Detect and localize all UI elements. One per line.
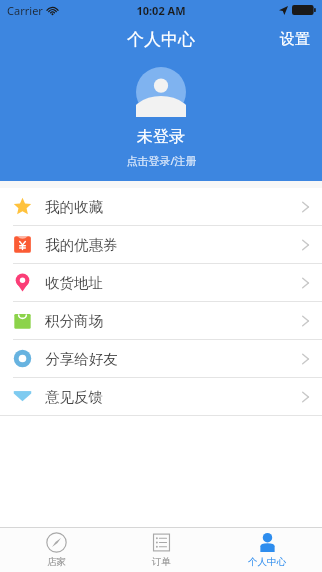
staticText: 个人中心 [248, 556, 286, 568]
staticText: 积分商场 [45, 312, 103, 330]
staticText: 订单 [152, 556, 171, 568]
staticText: Carrier [7, 3, 43, 18]
button[interactable]: 分享给好友 [0, 340, 322, 377]
staticText: 收货地址 [45, 274, 103, 292]
button[interactable]: 店家 [6, 529, 106, 571]
button[interactable]: 收货地址 [0, 264, 322, 301]
staticText: 个人中心 [127, 29, 195, 50]
button[interactable]: 我的优惠券 [0, 226, 322, 263]
staticText: 未登录 [137, 127, 185, 147]
button[interactable]: 我的收藏 [0, 188, 322, 225]
button[interactable]: 订单 [111, 529, 211, 571]
staticText: 点击登录/注册 [126, 153, 197, 168]
button[interactable]: 个人中心 [217, 529, 317, 571]
staticText: 设置 [280, 30, 310, 49]
button[interactable]: 设置 [268, 22, 322, 57]
button[interactable]: 未登录 [0, 58, 322, 181]
staticText: 我的收藏 [45, 198, 103, 216]
button[interactable]: 积分商场 [0, 302, 322, 339]
staticText: 店家 [47, 556, 66, 568]
staticText: 意见反馈 [45, 388, 103, 406]
staticText: 10:02 AM [136, 3, 186, 18]
staticText: 我的优惠券 [45, 236, 118, 254]
staticText: 分享给好友 [45, 350, 118, 368]
button[interactable]: 意见反馈 [0, 378, 322, 415]
